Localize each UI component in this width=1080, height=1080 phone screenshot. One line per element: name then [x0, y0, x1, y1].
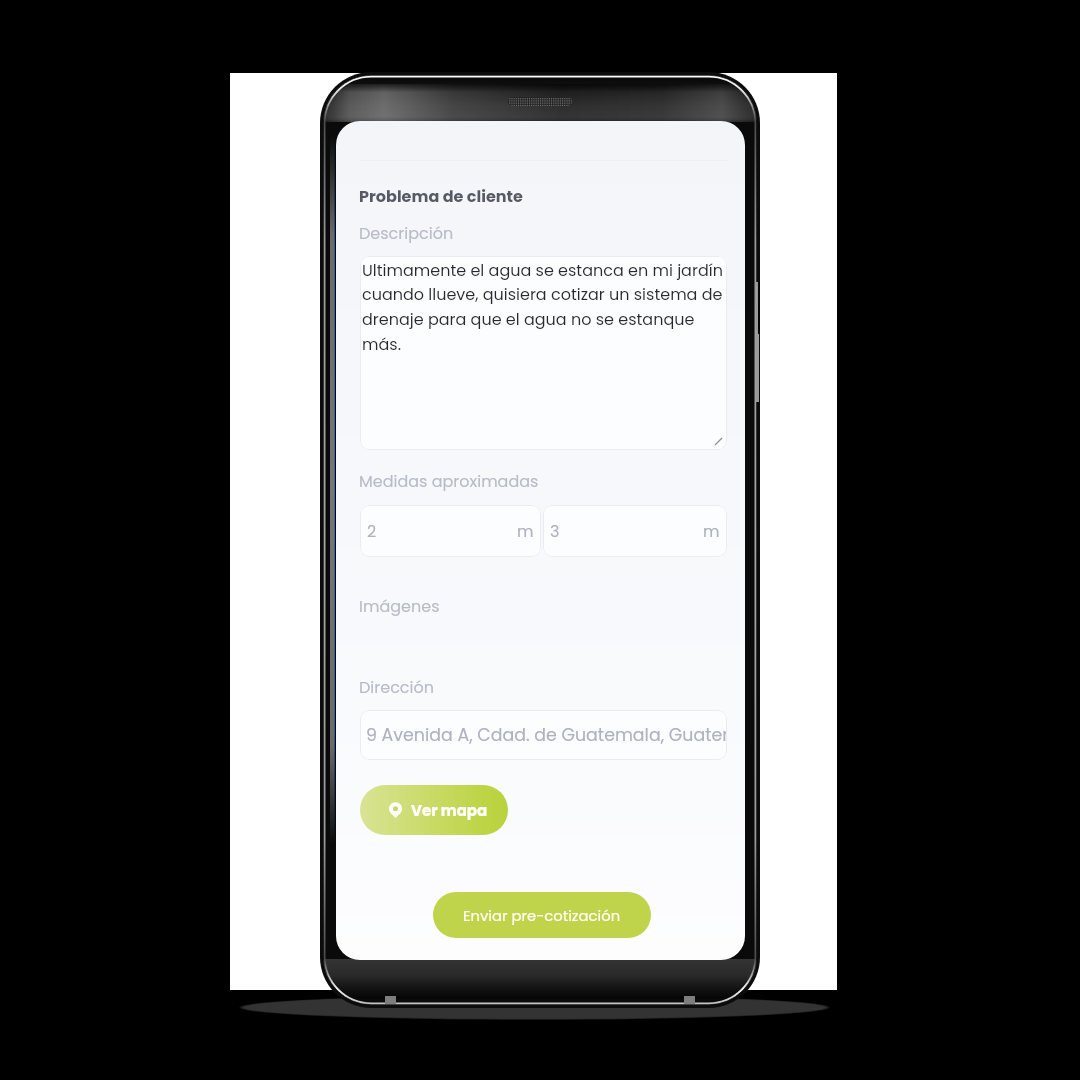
- button[interactable]: 3: [543, 505, 727, 557]
- button[interactable]: Ultimamente el agua se estanca en mi jar…: [360, 256, 727, 450]
- other: Map pin: [388, 803, 403, 818]
- staticText: Medidas aproximadas: [359, 470, 539, 492]
- staticText: m: [517, 520, 534, 542]
- button[interactable]: 9 Avenida A, Cdad. de Guatemala, Guatema…: [360, 710, 727, 760]
- staticText: 3: [550, 520, 560, 542]
- staticText: Problema de cliente: [359, 185, 523, 207]
- staticText: Descripción: [359, 222, 454, 244]
- button[interactable]: Map pin: [360, 785, 508, 835]
- staticText: 9 Avenida A, Cdad. de Guatemala, Guatema…: [366, 723, 727, 747]
- staticText: m: [703, 520, 720, 542]
- staticText: Imágenes: [359, 595, 440, 617]
- button[interactable]: Enviar pre-cotización: [433, 892, 651, 938]
- staticText: Ultimamente el agua se estanca en mi jar…: [362, 259, 725, 356]
- staticText: Enviar pre-cotización: [463, 905, 621, 926]
- button[interactable]: 2: [360, 505, 541, 557]
- staticText: Ver mapa: [411, 800, 488, 821]
- staticText: 2: [367, 520, 377, 542]
- staticText: Dirección: [359, 676, 434, 698]
